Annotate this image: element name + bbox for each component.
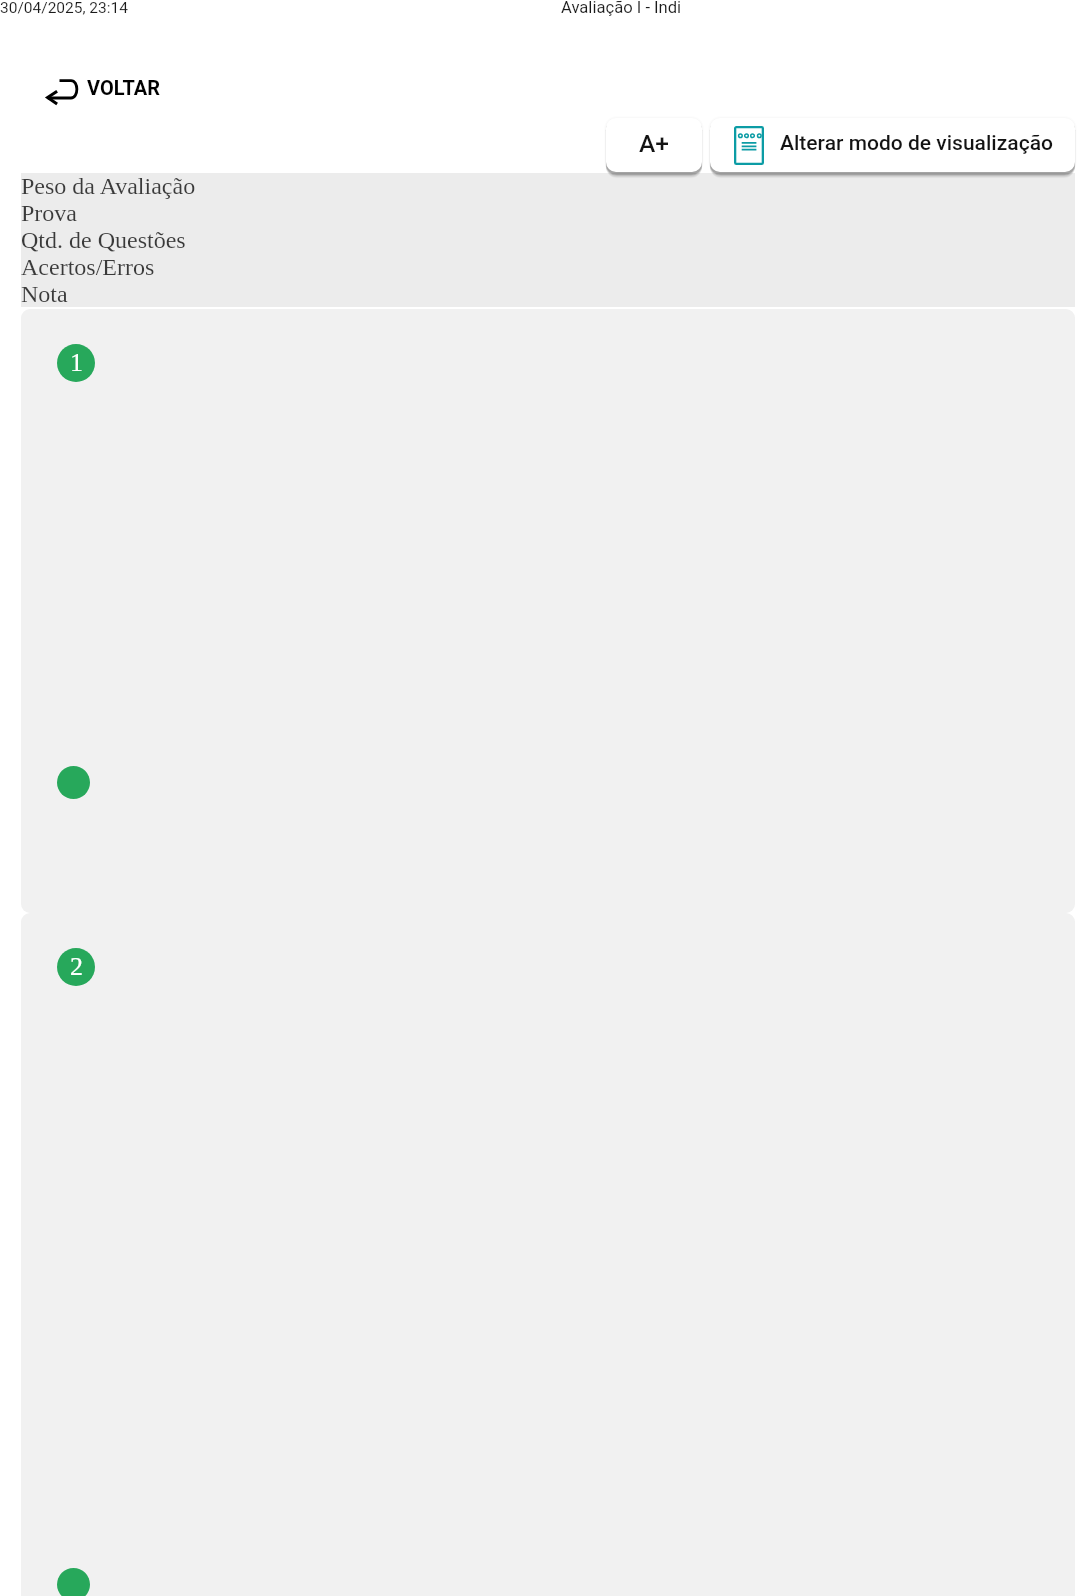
staticText: 2 bbox=[70, 952, 83, 981]
button[interactable]: A+ bbox=[606, 118, 702, 172]
staticText: Prova bbox=[21, 200, 77, 227]
staticText: Acertos/Erros bbox=[21, 254, 155, 281]
staticText: 30/04/2025, 23:14 bbox=[0, 0, 128, 17]
staticText: Qtd. de Questões bbox=[21, 227, 186, 254]
button[interactable]: Voltar bbox=[44, 74, 164, 106]
button[interactable]: 1 bbox=[21, 309, 1075, 913]
staticText: 1 bbox=[70, 348, 83, 377]
staticText: Peso da Avaliação bbox=[21, 173, 196, 200]
staticText: VOLTAR bbox=[87, 76, 161, 99]
button[interactable]: Alterar modo de visualização bbox=[710, 118, 1075, 172]
staticText: Avaliação I - Indi bbox=[561, 0, 682, 17]
button[interactable]: 2 bbox=[21, 913, 1075, 1596]
staticText: Nota bbox=[21, 281, 68, 308]
staticText: Alterar modo de visualização bbox=[780, 131, 1053, 156]
staticText: A+ bbox=[639, 129, 669, 158]
